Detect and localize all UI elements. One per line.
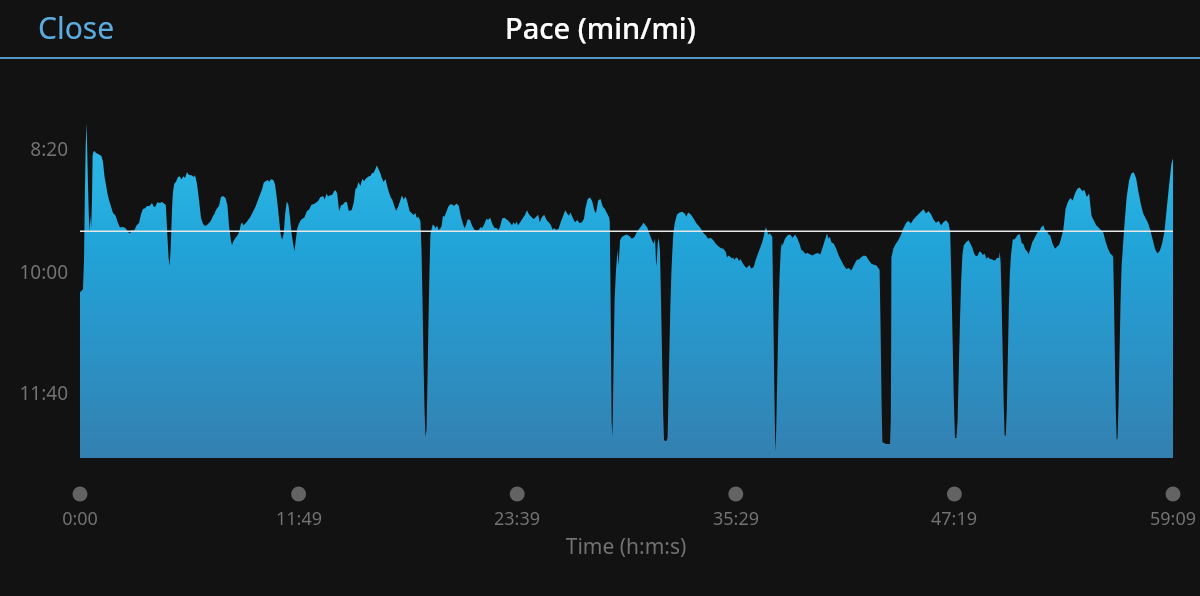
staticText: Pace (min/mi)	[505, 8, 696, 47]
button[interactable]: Close	[0, 0, 141, 57]
staticText: 11:49	[239, 506, 359, 531]
staticText: Close	[38, 7, 115, 44]
staticText: 47:19	[894, 506, 1014, 531]
staticText: 11:40	[0, 380, 68, 406]
staticText: 10:00	[0, 259, 68, 285]
staticText: 8:20	[0, 136, 68, 162]
staticText: 59:09	[1113, 506, 1200, 531]
staticText: 35:29	[676, 506, 796, 531]
staticText: 0:00	[20, 506, 140, 531]
staticText: 23:39	[457, 506, 577, 531]
staticText: Time (h:m:s)	[426, 532, 826, 561]
